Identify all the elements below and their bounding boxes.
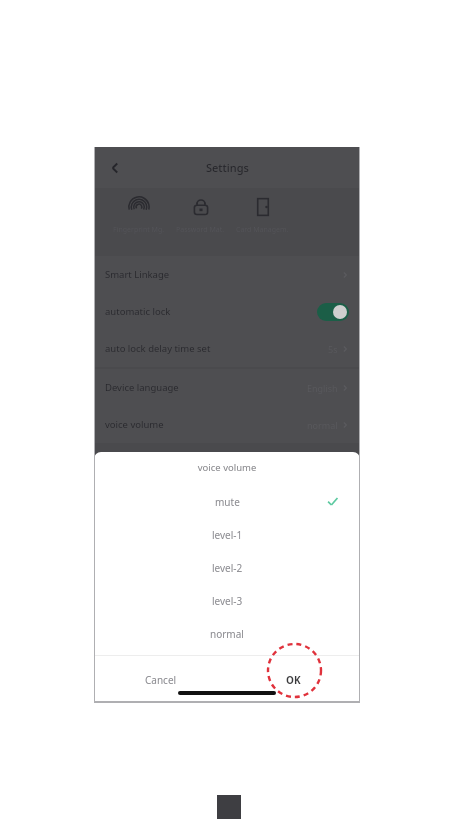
button[interactable]: automatic lock bbox=[94, 293, 360, 330]
staticText: mute bbox=[215, 495, 240, 509]
staticText: level-2 bbox=[212, 561, 243, 575]
button[interactable]: Password Mat. bbox=[176, 196, 225, 235]
button[interactable]: Cancel bbox=[94, 656, 227, 703]
button[interactable]: Card Managem. bbox=[236, 196, 289, 235]
button[interactable]: Device language bbox=[94, 369, 360, 406]
button[interactable]: automatic lock toggle bbox=[317, 303, 349, 321]
staticText: Cancel bbox=[145, 673, 177, 687]
button[interactable]: Smart Linkage bbox=[94, 256, 360, 293]
button[interactable]: OK bbox=[227, 656, 360, 703]
staticText: automatic lock bbox=[105, 305, 171, 318]
staticText: normal bbox=[210, 627, 244, 641]
staticText: Smart Linkage bbox=[105, 268, 170, 281]
button[interactable]: normal bbox=[94, 617, 360, 650]
button[interactable]: Fingerprint Mg. bbox=[113, 196, 165, 235]
button[interactable]: level-3 bbox=[94, 584, 360, 617]
staticText: level-3 bbox=[212, 594, 243, 608]
button[interactable]: level-1 bbox=[94, 518, 360, 551]
button[interactable]: auto lock delay time set bbox=[94, 330, 360, 367]
button[interactable]: voice volume bbox=[94, 406, 360, 443]
staticText: auto lock delay time set bbox=[105, 342, 211, 355]
staticText: Device language bbox=[105, 381, 179, 394]
staticText: Settings bbox=[206, 160, 249, 175]
staticText: OK bbox=[286, 673, 301, 687]
staticText: voice volume bbox=[94, 461, 360, 474]
button[interactable]: mute bbox=[94, 485, 360, 518]
button[interactable]: level-2 bbox=[94, 551, 360, 584]
button[interactable]: Back bbox=[100, 153, 130, 183]
staticText: level-1 bbox=[212, 528, 243, 542]
staticText: voice volume bbox=[105, 418, 164, 431]
staticText: English bbox=[307, 382, 338, 394]
